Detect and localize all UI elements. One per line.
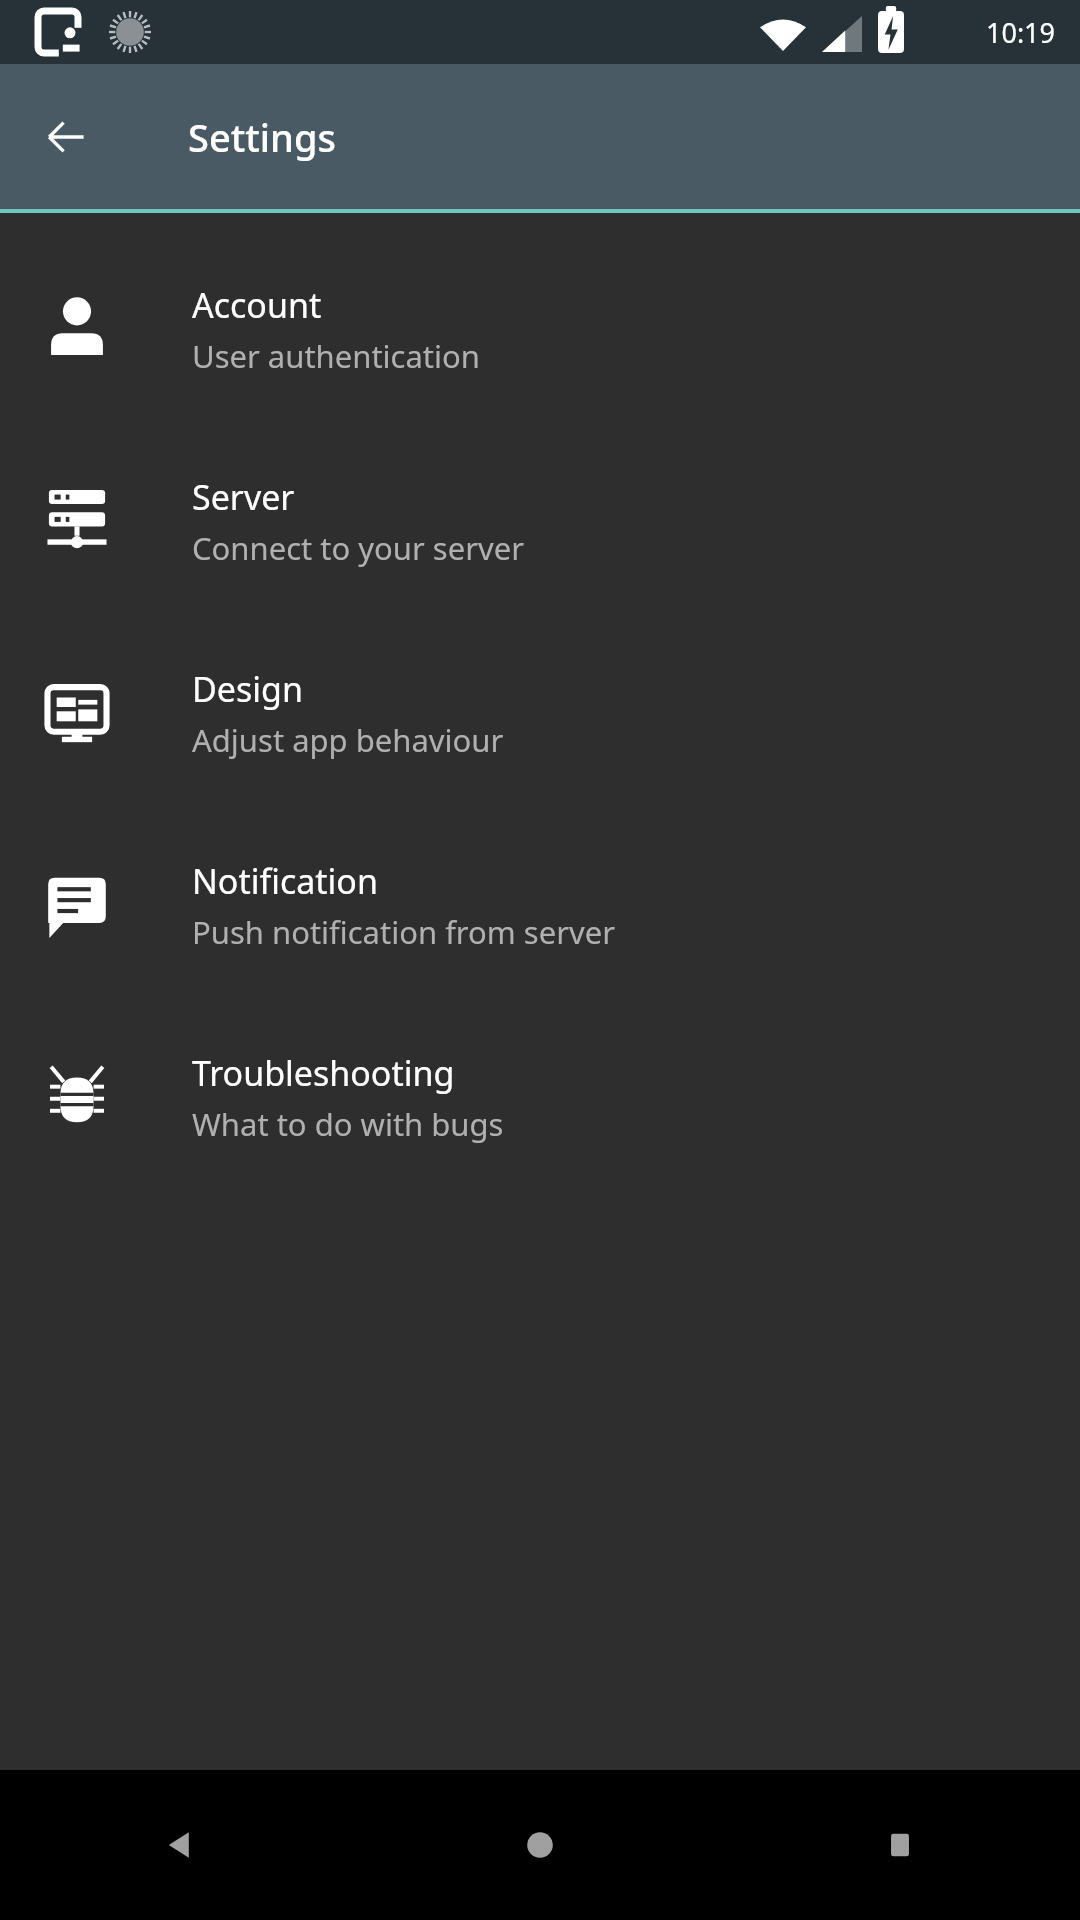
staticText: Design [192,666,303,712]
staticText: Account [192,282,322,328]
button[interactable]: Notification [0,809,1080,1001]
staticText: Connect to your server [192,527,525,569]
staticText: What to do with bugs [192,1103,504,1145]
staticText: Push notification from server [192,911,615,953]
staticText: Troubleshooting [192,1050,455,1096]
button[interactable]: Home [360,1770,720,1920]
staticText: Server [192,474,295,520]
button[interactable]: Back [0,1770,360,1920]
staticText: User authentication [192,335,480,377]
button[interactable]: Design [0,617,1080,809]
button[interactable]: Server [0,425,1080,617]
staticText: Notification [192,858,378,904]
button[interactable]: Recent apps [720,1770,1080,1920]
staticText: Adjust app behaviour [192,719,504,761]
staticText: Settings [188,111,336,163]
button[interactable]: Back [30,101,102,173]
button[interactable]: Account [0,233,1080,425]
button[interactable]: Troubleshooting [0,1001,1080,1193]
staticText: 10:19 [986,14,1056,51]
